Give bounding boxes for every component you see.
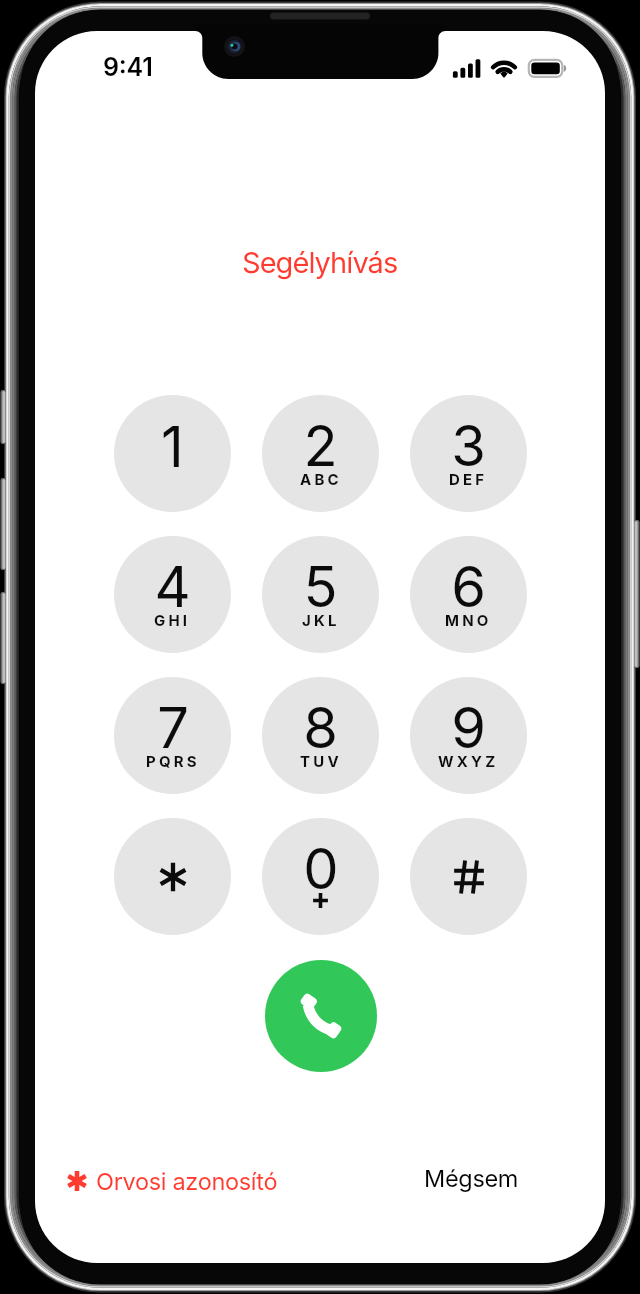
button[interactable]: Call — [265, 960, 377, 1072]
staticText: ABC — [300, 470, 342, 488]
staticText: DEF — [449, 470, 488, 488]
button[interactable]: Mégsem — [424, 1164, 519, 1192]
button[interactable]: 7 — [114, 677, 231, 794]
staticText: Orvosi azonosító — [96, 1167, 278, 1195]
staticText: 9 — [451, 694, 486, 762]
staticText: 9:41 — [103, 52, 153, 82]
staticText: 8 — [303, 694, 338, 762]
staticText: MNO — [445, 611, 492, 629]
button[interactable]: 8 — [262, 677, 379, 794]
staticText: 7 — [157, 694, 189, 762]
staticText: Mégsem — [424, 1164, 519, 1192]
staticText: 4 — [154, 553, 191, 621]
button[interactable]: 9 — [410, 677, 527, 794]
button[interactable] — [410, 818, 527, 935]
staticText: GHI — [154, 611, 191, 629]
button[interactable]: 4 — [114, 536, 231, 653]
button[interactable]: 6 — [410, 536, 527, 653]
staticText: TUV — [300, 752, 342, 770]
button[interactable]: 2 — [262, 395, 379, 512]
staticText: JKL — [302, 611, 340, 629]
staticText: 0 — [303, 835, 339, 903]
button[interactable]: 0 — [262, 818, 379, 935]
staticText: 6 — [451, 553, 486, 621]
staticText: 5 — [303, 553, 338, 621]
staticText: PQRS — [146, 752, 200, 770]
staticText: 2 — [303, 412, 338, 480]
button[interactable]: 1 — [114, 395, 231, 512]
button[interactable]: Orvosi azonosító — [58, 1162, 278, 1200]
staticText: 3 — [451, 412, 486, 480]
staticText: 1 — [161, 413, 184, 481]
staticText: WXYZ — [438, 752, 499, 770]
button[interactable]: 3 — [410, 395, 527, 512]
button[interactable] — [114, 818, 231, 935]
staticText: Segélyhívás — [242, 245, 398, 280]
button[interactable]: 5 — [262, 536, 379, 653]
